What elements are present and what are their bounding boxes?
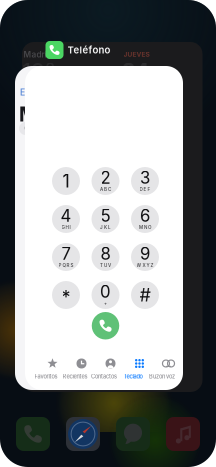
button[interactable]: Teclado bbox=[118, 358, 147, 378]
button[interactable]: 3 bbox=[131, 167, 159, 195]
staticText: * bbox=[61, 287, 70, 308]
staticText: 9 bbox=[140, 244, 150, 264]
staticText: J K L bbox=[100, 225, 111, 230]
staticText: Teclado bbox=[123, 373, 142, 380]
button[interactable]: 8 bbox=[91, 243, 119, 271]
staticText: Favoritos bbox=[34, 373, 57, 380]
button[interactable]: 2 bbox=[91, 167, 119, 195]
staticText: M N O bbox=[139, 225, 151, 230]
staticText: 6 bbox=[140, 206, 150, 226]
button[interactable]: # bbox=[131, 281, 159, 309]
button[interactable]: Contactos bbox=[89, 358, 118, 378]
staticText: Recientes bbox=[62, 373, 87, 380]
staticText: 1 bbox=[62, 170, 69, 192]
button[interactable]: Llamar bbox=[92, 312, 119, 339]
staticText: Contactos bbox=[91, 373, 117, 380]
staticText: T U V bbox=[100, 263, 111, 268]
staticText: 2 bbox=[100, 168, 110, 188]
staticText: G H I bbox=[61, 225, 70, 230]
staticText: 7 bbox=[61, 244, 70, 264]
button[interactable]: Recientes bbox=[60, 358, 89, 378]
staticText: Buzón voz bbox=[149, 373, 175, 380]
button[interactable]: Safari bbox=[66, 417, 100, 451]
button[interactable]: Mensajes bbox=[116, 417, 150, 451]
button[interactable]: 0 bbox=[91, 281, 119, 309]
button[interactable]: 6 bbox=[131, 205, 159, 233]
staticText: D E F bbox=[139, 187, 150, 192]
staticText: Mail bbox=[19, 102, 60, 126]
staticText: Editar bbox=[20, 87, 43, 97]
button[interactable]: 7 bbox=[52, 243, 80, 271]
button[interactable]: Favoritos bbox=[31, 358, 60, 378]
staticText: JUEVES bbox=[123, 50, 149, 58]
staticText: 0 bbox=[100, 282, 111, 302]
staticText: 8 bbox=[100, 244, 110, 264]
staticText: # bbox=[139, 284, 150, 306]
staticText: 5 bbox=[100, 206, 110, 226]
staticText: P Q R S bbox=[58, 263, 73, 268]
button[interactable]: 4 bbox=[52, 205, 80, 233]
staticText: A B C bbox=[100, 187, 111, 192]
staticText: Teléfono bbox=[67, 44, 110, 56]
button[interactable]: 9 bbox=[131, 243, 159, 271]
button[interactable]: Teléfono bbox=[16, 417, 50, 451]
staticText: 24 bbox=[122, 58, 149, 84]
staticText: W X Y Z bbox=[136, 263, 153, 268]
button[interactable]: 5 bbox=[91, 205, 119, 233]
staticText: 19° bbox=[22, 58, 55, 85]
button[interactable]: * bbox=[52, 281, 80, 309]
staticText: 4 bbox=[60, 206, 71, 226]
button[interactable]: Buzón voz bbox=[147, 358, 176, 378]
button[interactable]: 1 bbox=[52, 167, 80, 195]
staticText: + bbox=[104, 301, 107, 306]
staticText: 3 bbox=[140, 168, 150, 188]
button[interactable]: Música bbox=[166, 417, 200, 451]
staticText: Madrid bbox=[24, 49, 52, 59]
